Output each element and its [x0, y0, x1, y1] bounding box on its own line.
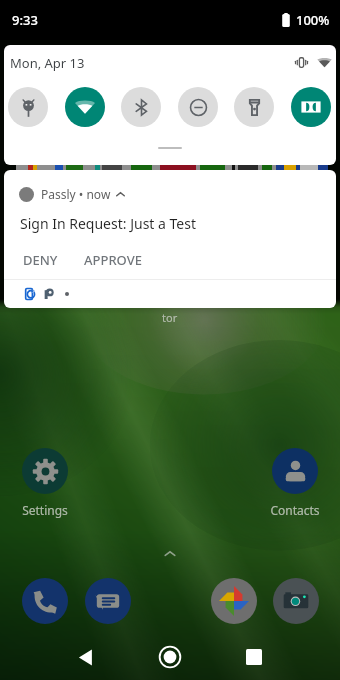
- button[interactable]: Flashlight: [234, 87, 274, 127]
- staticText: Passly • now: [41, 186, 111, 202]
- button[interactable]: Back: [45, 634, 125, 680]
- button[interactable]: Recents: [214, 634, 294, 680]
- button[interactable]: Home: [130, 634, 210, 680]
- button[interactable]: Do not disturb: [178, 87, 218, 127]
- button[interactable]: Messages: [85, 578, 131, 624]
- staticText: Contacts: [270, 502, 320, 518]
- button[interactable]: Settings: [12, 448, 78, 518]
- button[interactable]: Bluetooth: [121, 87, 161, 127]
- staticText: DENY: [23, 251, 58, 269]
- staticText: Settings: [22, 502, 68, 518]
- button[interactable]: Cardboard: [291, 87, 331, 127]
- button[interactable]: Contacts: [262, 448, 328, 518]
- staticText: 9:33: [12, 11, 38, 29]
- staticText: Sign In Request: Just a Test: [20, 214, 196, 233]
- staticText: tor: [162, 310, 178, 325]
- button[interactable]: APPROVE: [73, 247, 153, 273]
- button[interactable]: Camera: [273, 578, 319, 624]
- button[interactable]: Phone: [22, 578, 68, 624]
- button[interactable]: Passly • now: [4, 170, 336, 308]
- button[interactable]: Bug report: [8, 87, 48, 127]
- staticText: Mon, Apr 13: [10, 54, 85, 72]
- staticText: APPROVE: [84, 251, 142, 269]
- staticText: 100%: [296, 11, 330, 29]
- button[interactable]: DENY: [12, 247, 69, 273]
- button[interactable]: Wi-Fi: [65, 87, 105, 127]
- button[interactable]: Photos: [211, 578, 257, 624]
